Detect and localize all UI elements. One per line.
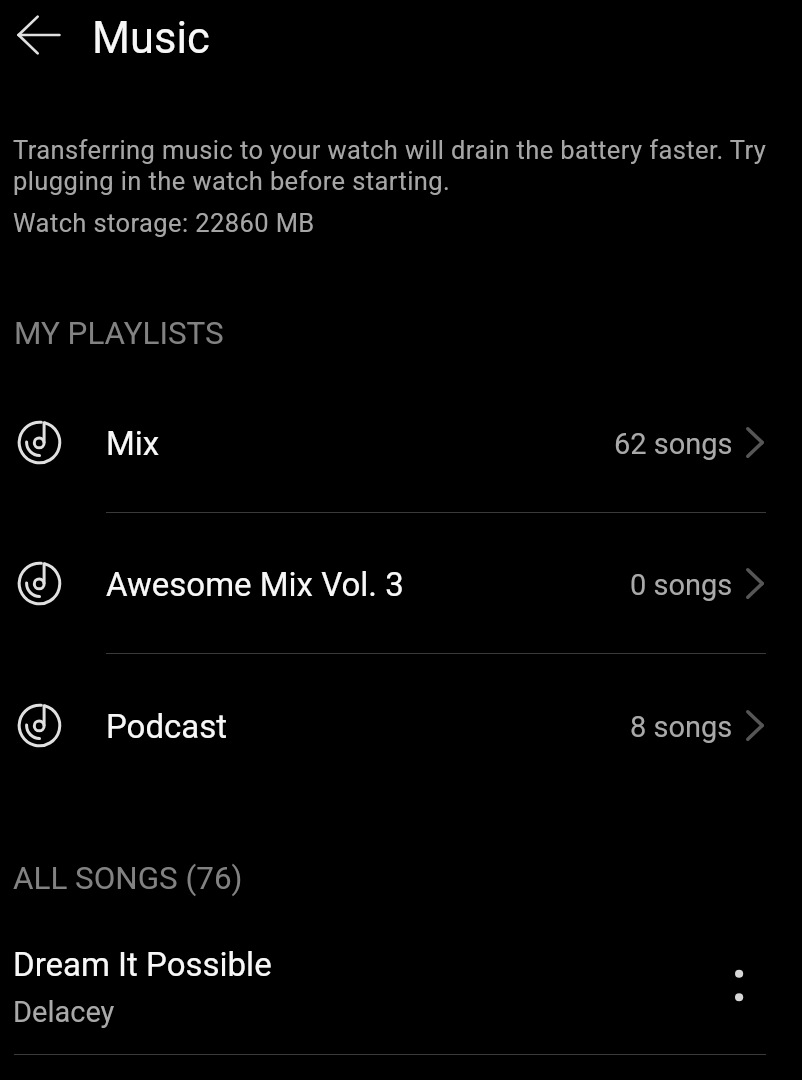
staticText: Transferring music to your watch will dr… bbox=[13, 134, 771, 196]
button[interactable]: Dream It Possible bbox=[0, 916, 802, 1054]
staticText: 0 songs bbox=[630, 568, 733, 602]
staticText: Mix bbox=[106, 424, 160, 463]
staticText: Dream It Possible bbox=[13, 945, 272, 984]
staticText: Delacey bbox=[13, 995, 115, 1029]
staticText: Podcast bbox=[106, 707, 228, 746]
staticText: Awesome Mix Vol. 3 bbox=[106, 565, 404, 604]
button[interactable]: Navigate up bbox=[17, 15, 61, 55]
staticText: Music bbox=[92, 13, 210, 64]
staticText: ALL SONGS (76) bbox=[13, 860, 243, 897]
staticText: 62 songs bbox=[614, 427, 733, 461]
button[interactable]: Podcast bbox=[0, 655, 802, 796]
staticText: 8 songs bbox=[630, 710, 733, 744]
staticText: MY PLAYLISTS bbox=[14, 315, 224, 352]
button[interactable]: Awesome Mix Vol. 3 bbox=[0, 513, 802, 654]
staticText: Watch storage: 22860 MB bbox=[13, 208, 315, 238]
button[interactable]: More options bbox=[713, 959, 765, 1011]
button[interactable]: Mix bbox=[0, 372, 802, 513]
